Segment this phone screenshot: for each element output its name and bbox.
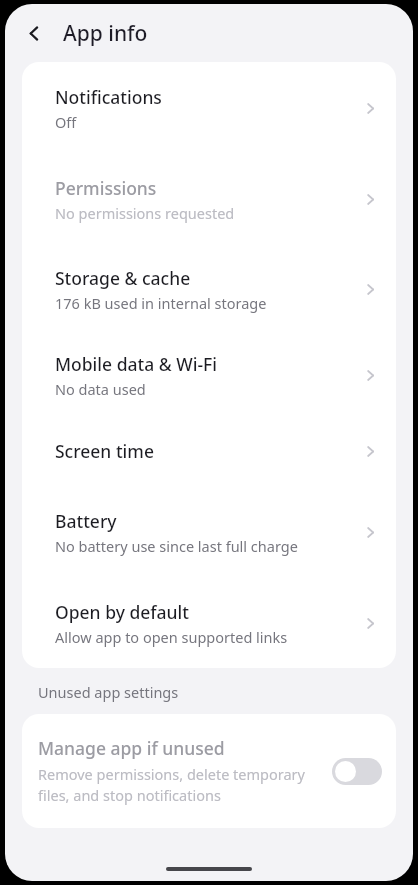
button[interactable]: Storage & cache: [22, 244, 396, 334]
button[interactable]: Back: [12, 11, 56, 55]
button[interactable]: Notifications: [22, 62, 396, 154]
staticText: Mobile data & Wi-Fi: [55, 352, 217, 376]
staticText: Remove permissions, delete temporary fil…: [38, 764, 318, 806]
staticText: Manage app if unused: [38, 736, 225, 760]
button[interactable]: Manage app if unused: [22, 714, 396, 828]
staticText: No permissions requested: [55, 203, 235, 223]
staticText: Notifications: [55, 85, 162, 109]
staticText: No battery use since last full charge: [55, 536, 298, 556]
button[interactable]: Permissions: [22, 154, 396, 244]
staticText: Battery: [55, 509, 117, 533]
staticText: Allow app to open supported links: [55, 627, 288, 647]
button[interactable]: Mobile data & Wi-Fi: [22, 334, 396, 416]
staticText: Unused app settings: [38, 682, 179, 702]
staticText: Screen time: [55, 439, 154, 463]
staticText: No data used: [55, 379, 146, 399]
staticText: 176 kB used in internal storage: [55, 293, 267, 313]
staticText: Permissions: [55, 176, 157, 200]
button[interactable]: Battery: [22, 486, 396, 578]
staticText: Storage & cache: [55, 266, 191, 290]
button[interactable]: Screen time: [22, 416, 396, 486]
staticText: Open by default: [55, 600, 189, 624]
button[interactable]: Open by default: [22, 578, 396, 668]
staticText: Off: [55, 112, 77, 132]
staticText: App info: [63, 19, 148, 48]
